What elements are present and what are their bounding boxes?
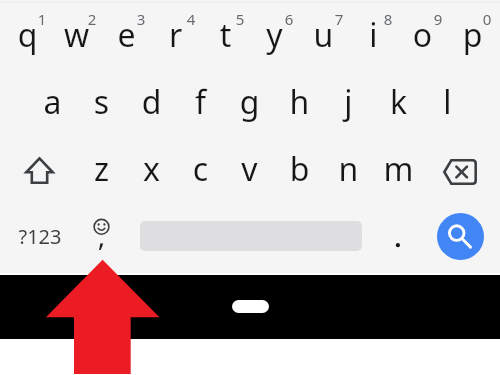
staticText: 1: [30, 9, 54, 29]
staticText: j: [324, 80, 373, 124]
button[interactable]: h: [275, 80, 324, 130]
staticText: w: [52, 13, 101, 57]
button[interactable]: m: [374, 147, 423, 197]
staticText: z: [77, 147, 126, 191]
staticText: y: [250, 13, 299, 57]
button[interactable]: g: [225, 80, 274, 130]
button[interactable]: k: [374, 80, 423, 130]
staticText: x: [127, 147, 176, 191]
staticText: ,: [77, 216, 126, 254]
staticText: 4: [179, 9, 203, 29]
staticText: s: [77, 80, 126, 124]
button[interactable]: c: [176, 147, 225, 197]
button[interactable]: d: [127, 80, 176, 130]
staticText: 0: [475, 9, 499, 29]
button[interactable]: ?123: [3, 206, 77, 262]
button[interactable]: Home: [232, 300, 269, 313]
staticText: b: [275, 147, 324, 191]
staticText: m: [374, 147, 423, 191]
staticText: d: [127, 80, 176, 124]
staticText: g: [225, 80, 274, 124]
button[interactable]: x: [127, 147, 176, 197]
button[interactable]: Space: [127, 206, 374, 262]
staticText: t: [201, 13, 250, 57]
staticText: ?123: [3, 223, 77, 250]
staticText: 9: [426, 9, 450, 29]
button[interactable]: s: [77, 80, 126, 130]
staticText: o: [398, 13, 447, 57]
button[interactable]: z: [77, 147, 126, 197]
button[interactable]: f: [176, 80, 225, 130]
staticText: f: [176, 80, 225, 124]
staticText: n: [324, 147, 373, 191]
button[interactable]: Search: [423, 206, 497, 262]
button[interactable]: u: [299, 13, 348, 63]
staticText: r: [151, 13, 200, 57]
button[interactable]: Shift: [2, 144, 76, 196]
button[interactable]: r: [151, 13, 200, 63]
staticText: p: [448, 13, 497, 57]
staticText: 6: [277, 9, 301, 29]
button[interactable]: [374, 212, 423, 262]
button[interactable]: n: [324, 147, 373, 197]
button[interactable]: o: [398, 13, 447, 63]
button[interactable]: b: [275, 147, 324, 197]
button[interactable]: Backspace: [423, 146, 497, 198]
button[interactable]: w: [52, 13, 101, 63]
staticText: 8: [376, 9, 400, 29]
button[interactable]: p: [448, 13, 497, 63]
staticText: k: [374, 80, 423, 124]
staticText: 3: [129, 9, 153, 29]
staticText: a: [28, 80, 77, 124]
button[interactable]: v: [225, 147, 274, 197]
staticText: 2: [80, 9, 104, 29]
staticText: e: [102, 13, 151, 57]
button[interactable]: y: [250, 13, 299, 63]
staticText: l: [423, 80, 472, 124]
button[interactable]: i: [349, 13, 398, 63]
button[interactable]: l: [423, 80, 472, 130]
button[interactable]: Emoji: [77, 210, 126, 258]
button[interactable]: j: [324, 80, 373, 130]
button[interactable]: a: [28, 80, 77, 130]
button[interactable]: e: [102, 13, 151, 63]
staticText: u: [299, 13, 348, 57]
staticText: v: [225, 147, 274, 191]
staticText: i: [349, 13, 398, 57]
button[interactable]: t: [201, 13, 250, 63]
staticText: q: [3, 13, 52, 57]
staticText: c: [176, 147, 225, 191]
staticText: 7: [327, 9, 351, 29]
staticText: 5: [228, 9, 252, 29]
staticText: h: [275, 80, 324, 124]
button[interactable]: q: [3, 13, 52, 63]
